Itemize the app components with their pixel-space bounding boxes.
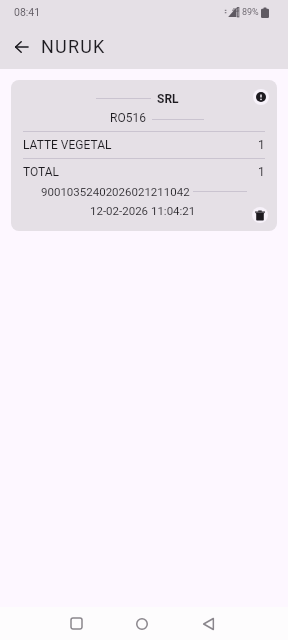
- staticText: 1: [258, 138, 265, 152]
- button[interactable]: Back: [191, 607, 225, 640]
- button[interactable]: Info: [253, 89, 269, 105]
- staticText: 12-02-2026 11:04:21: [90, 204, 196, 216]
- staticText: 08:41: [14, 6, 41, 18]
- button[interactable]: Home: [125, 607, 159, 640]
- staticText: 89%: [242, 7, 259, 18]
- staticText: 4G: [232, 7, 239, 13]
- button[interactable]: Delete: [252, 207, 268, 223]
- button[interactable]: SRL: [11, 80, 277, 231]
- staticText: 1: [258, 165, 265, 179]
- staticText: 90010352402026021211042: [41, 185, 190, 197]
- button[interactable]: LATTE VEGETAL: [23, 131, 265, 158]
- button[interactable]: Back: [6, 31, 38, 63]
- staticText: LATTE VEGETAL: [23, 138, 112, 152]
- staticText: NURUK: [41, 36, 106, 57]
- staticText: RO516: [110, 111, 146, 123]
- staticText: SRL: [157, 92, 179, 104]
- button[interactable]: TOTAL: [23, 158, 265, 185]
- button[interactable]: Recent apps: [59, 607, 93, 640]
- staticText: TOTAL: [23, 165, 60, 179]
